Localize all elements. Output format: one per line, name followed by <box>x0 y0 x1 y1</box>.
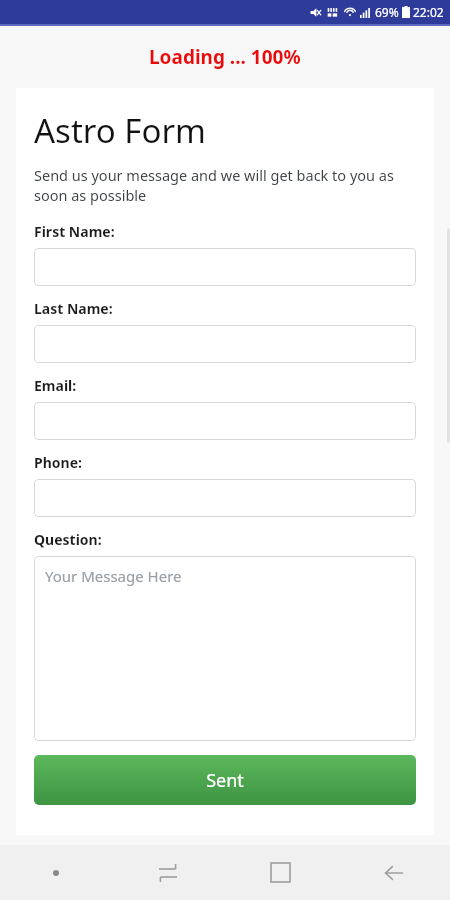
staticText: Question: <box>34 530 102 549</box>
staticText: First Name: <box>34 222 115 241</box>
staticText: 69% <box>375 4 399 20</box>
staticText: Loading ... 100% <box>149 44 301 70</box>
staticText: Email: <box>34 376 77 395</box>
button[interactable]: Recents <box>112 845 224 900</box>
button[interactable]: Sent <box>34 755 416 805</box>
other: Indicator <box>0 845 112 900</box>
button[interactable]: Back <box>337 845 450 900</box>
button[interactable]: Home <box>224 845 337 900</box>
button[interactable]: Your Message Here <box>34 556 416 741</box>
staticText: Your Message Here <box>45 566 182 586</box>
staticText: Send us your message and we will get bac… <box>34 165 416 206</box>
staticText: Last Name: <box>34 299 113 318</box>
staticText: Phone: <box>34 453 82 472</box>
staticText: 22:02 <box>413 4 444 20</box>
button[interactable] <box>34 248 416 286</box>
button[interactable] <box>34 325 416 363</box>
staticText: Astro Form <box>34 108 206 153</box>
staticText: Sent <box>206 768 244 793</box>
button[interactable] <box>34 402 416 440</box>
button[interactable] <box>34 479 416 517</box>
